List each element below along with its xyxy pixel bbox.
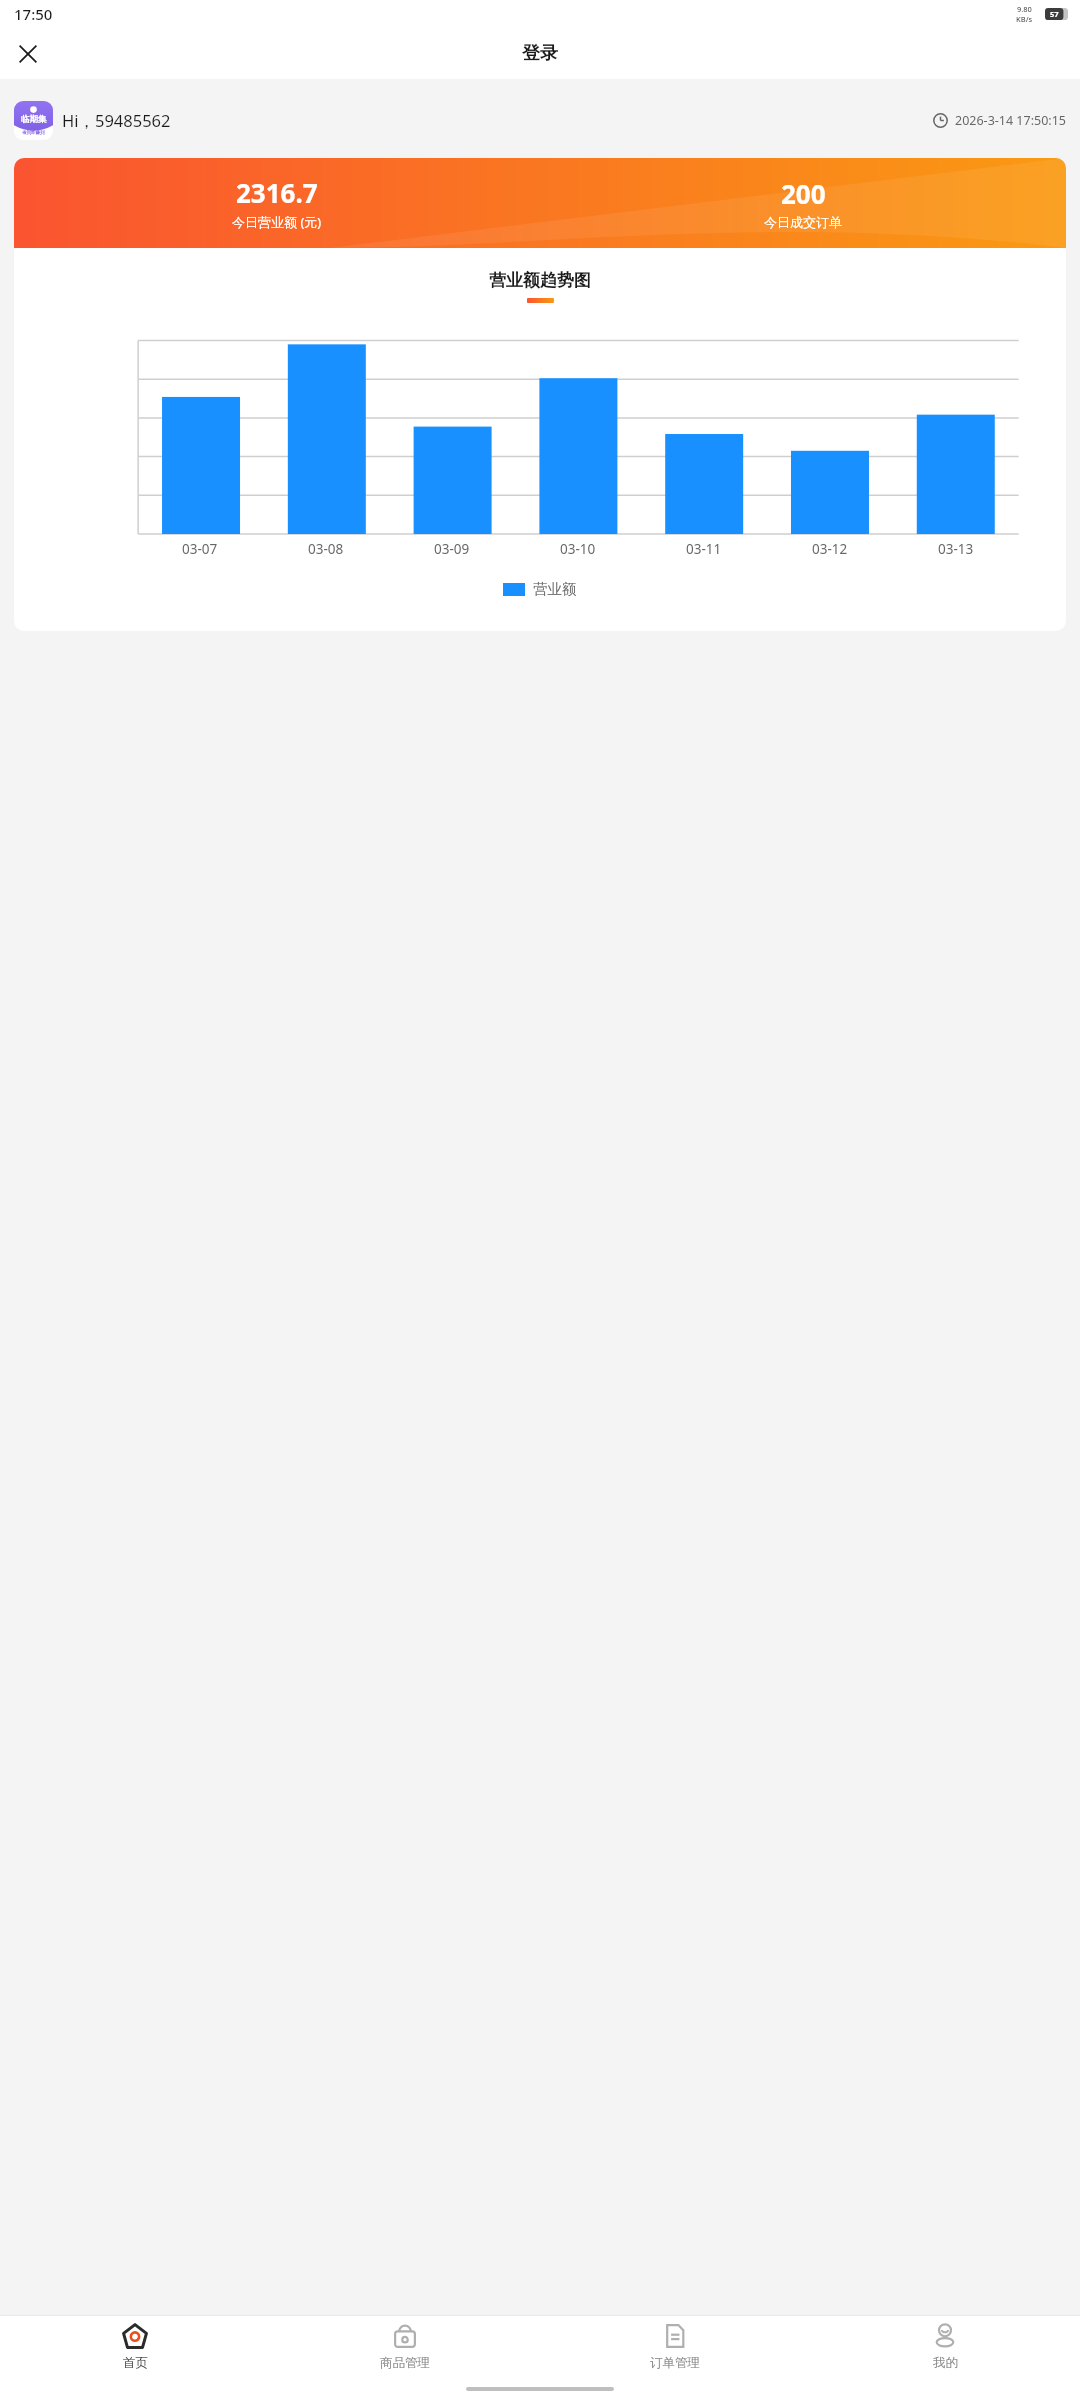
- staticText: 营业额趋势图: [14, 270, 1066, 291]
- staticText: 今日营业额 (元): [232, 213, 322, 231]
- staticText: 登录: [522, 42, 558, 65]
- button[interactable]: 订单管理: [540, 2316, 810, 2378]
- staticText: 2026-3-14 17:50:15: [955, 112, 1066, 129]
- staticText: 57: [1050, 9, 1059, 19]
- staticText: 省到即赚到: [22, 130, 45, 136]
- staticText: KB/s: [1016, 14, 1033, 24]
- staticText: 营业额: [533, 580, 577, 598]
- staticText: 2316.7: [236, 175, 318, 210]
- staticText: 03-10: [560, 540, 596, 558]
- button[interactable]: 关闭: [6, 32, 50, 76]
- staticText: 03-08: [308, 540, 344, 558]
- staticText: 今日成交订单: [764, 214, 842, 230]
- staticText: 商品管理: [380, 2355, 430, 2371]
- button[interactable]: 2316.7: [14, 158, 1066, 248]
- staticText: 17:50: [14, 4, 53, 24]
- staticText: 我的: [933, 2355, 958, 2371]
- button[interactable]: 我的: [810, 2316, 1080, 2378]
- staticText: 03-07: [182, 540, 218, 558]
- staticText: 临期集: [21, 114, 47, 125]
- staticText: 9.80: [1017, 4, 1032, 14]
- button[interactable]: 首页: [0, 2316, 270, 2378]
- staticText: 订单管理: [650, 2355, 700, 2371]
- button[interactable]: 商品管理: [270, 2316, 540, 2378]
- staticText: 03-09: [434, 540, 470, 558]
- staticText: 首页: [123, 2355, 148, 2371]
- staticText: 200: [781, 176, 826, 211]
- staticText: Hi，59485562: [62, 109, 171, 132]
- staticText: 03-12: [812, 540, 848, 558]
- staticText: 03-11: [686, 540, 722, 558]
- staticText: 03-13: [938, 540, 974, 558]
